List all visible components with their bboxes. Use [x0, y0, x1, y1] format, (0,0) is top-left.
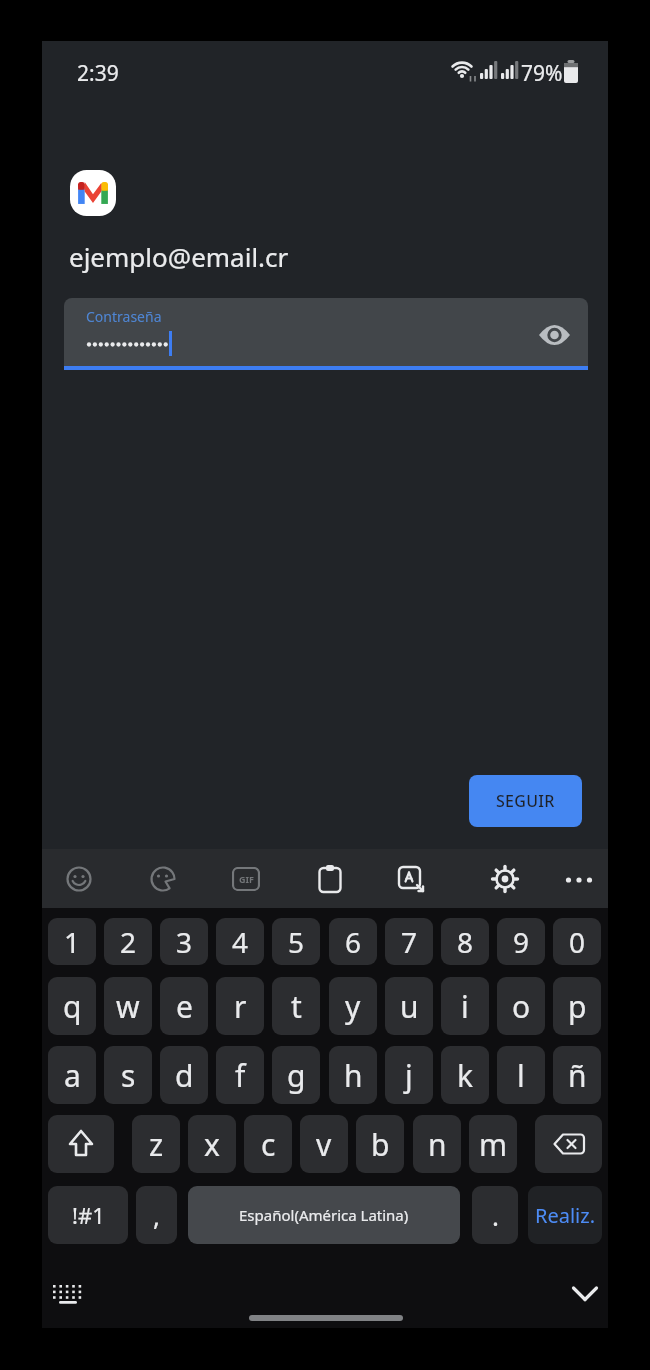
staticText: k [457, 1055, 474, 1096]
staticText: t [291, 986, 302, 1027]
button[interactable]: Español(América Latina) [188, 1186, 460, 1244]
staticText: w [116, 986, 140, 1027]
button[interactable]: GIF [232, 867, 260, 891]
staticText: Contraseña [86, 307, 162, 326]
staticText: s [121, 1055, 136, 1096]
button[interactable]: n [413, 1115, 461, 1173]
button[interactable] [66, 866, 92, 892]
button[interactable] [572, 1286, 598, 1303]
staticText: Español(América Latina) [239, 1205, 409, 1225]
staticText: 1 [64, 923, 81, 961]
staticText: 2 [120, 923, 137, 961]
staticText: x [204, 1124, 220, 1165]
staticText: 4 [232, 923, 249, 961]
button[interactable]: p [553, 977, 601, 1035]
button[interactable]: y [329, 977, 377, 1035]
staticText: 7 [401, 923, 418, 961]
staticText: d [175, 1055, 194, 1096]
button[interactable]: f [216, 1046, 264, 1104]
staticText: ñ [568, 1055, 587, 1096]
button[interactable]: 4 [216, 918, 264, 965]
button[interactable] [535, 1115, 602, 1173]
staticText: 3 [176, 923, 193, 961]
button[interactable]: l [497, 1046, 545, 1104]
button[interactable]: 5 [272, 918, 320, 965]
staticText: GIF [239, 873, 254, 885]
button[interactable] [491, 865, 519, 893]
button[interactable]: u [385, 977, 433, 1035]
staticText: Realiz. [535, 1202, 596, 1229]
staticText: 8 [457, 923, 474, 961]
button[interactable] [397, 865, 425, 893]
button[interactable]: . [472, 1186, 518, 1244]
staticText: z [149, 1124, 164, 1165]
staticText: p [568, 986, 587, 1027]
staticText: 0 [569, 923, 586, 961]
staticText: q [63, 986, 82, 1027]
button[interactable]: x [188, 1115, 236, 1173]
staticText: o [512, 986, 531, 1027]
button[interactable]: 8 [441, 918, 489, 965]
button[interactable]: r [216, 977, 264, 1035]
button[interactable]: m [469, 1115, 517, 1173]
button[interactable]: k [441, 1046, 489, 1104]
button[interactable]: i [441, 977, 489, 1035]
button[interactable]: c [244, 1115, 292, 1173]
staticText: m [479, 1124, 508, 1165]
button[interactable]: 3 [160, 918, 208, 965]
button[interactable] [318, 865, 342, 893]
staticText: a [64, 1055, 81, 1096]
button[interactable]: j [385, 1046, 433, 1104]
button[interactable]: w [104, 977, 152, 1035]
staticText: l [517, 1055, 525, 1096]
staticText: 9 [513, 923, 530, 961]
staticText: y [345, 986, 361, 1027]
button[interactable]: a [48, 1046, 96, 1104]
button[interactable]: 6 [329, 918, 377, 965]
staticText: i [461, 986, 469, 1027]
staticText: g [287, 1055, 306, 1096]
button[interactable]: 1 [48, 918, 96, 965]
button[interactable] [565, 876, 593, 884]
button[interactable]: h [329, 1046, 377, 1104]
button[interactable]: t [272, 977, 320, 1035]
button[interactable]: o [497, 977, 545, 1035]
staticText: . [492, 1198, 499, 1233]
button[interactable]: ñ [553, 1046, 601, 1104]
button[interactable] [150, 866, 176, 892]
staticText: c [261, 1124, 276, 1165]
button[interactable]: SEGUIR [469, 775, 582, 827]
staticText: 2:39 [77, 59, 119, 88]
button[interactable]: 2 [104, 918, 152, 965]
staticText: 79% [521, 59, 563, 88]
staticText: ejemplo@email.cr [69, 239, 289, 274]
staticText: f [235, 1055, 246, 1096]
button[interactable]: d [160, 1046, 208, 1104]
staticText: e [176, 986, 193, 1027]
button[interactable]: 9 [497, 918, 545, 965]
button[interactable]: g [272, 1046, 320, 1104]
button[interactable]: !#1 [48, 1186, 128, 1244]
button[interactable]: , [136, 1186, 177, 1244]
button[interactable] [51, 1283, 85, 1308]
button[interactable]: q [48, 977, 96, 1035]
button[interactable]: v [300, 1115, 348, 1173]
staticText: u [400, 986, 419, 1027]
staticText: , [153, 1198, 160, 1233]
button[interactable]: s [104, 1046, 152, 1104]
staticText: 6 [345, 923, 362, 961]
staticText: h [344, 1055, 363, 1096]
button[interactable]: e [160, 977, 208, 1035]
staticText: n [428, 1124, 447, 1165]
button[interactable] [64, 298, 588, 366]
staticText: SEGUIR [496, 790, 555, 812]
button[interactable]: 0 [553, 918, 601, 965]
button[interactable]: Realiz. [528, 1186, 602, 1244]
button[interactable] [48, 1115, 114, 1173]
staticText: j [405, 1055, 413, 1096]
staticText: r [234, 986, 247, 1027]
button[interactable]: z [132, 1115, 180, 1173]
button[interactable]: 7 [385, 918, 433, 965]
staticText: v [316, 1124, 332, 1165]
button[interactable]: b [356, 1115, 404, 1173]
